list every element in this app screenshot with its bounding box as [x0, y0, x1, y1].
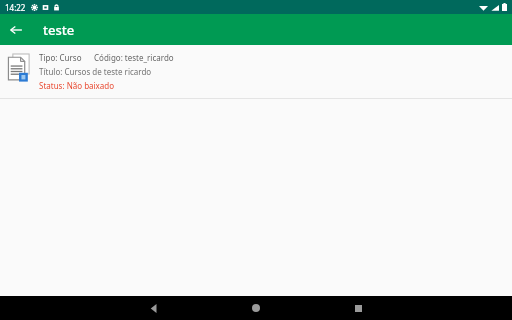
staticText: teste	[43, 21, 75, 39]
staticText: Status: Não baixado	[39, 80, 115, 91]
staticText: Código: teste_ricardo	[94, 52, 174, 63]
staticText: Tipo: Curso	[39, 52, 82, 63]
other: Document	[8, 54, 30, 81]
button[interactable]: Back	[0, 14, 31, 45]
staticText: Título: Cursos de teste ricardo	[39, 66, 152, 77]
button[interactable]: Home	[222, 296, 290, 320]
button[interactable]: Back	[120, 296, 188, 320]
staticText: 14:22	[5, 2, 26, 13]
button[interactable]: Recent apps	[324, 296, 392, 320]
button[interactable]: Document	[0, 45, 512, 98]
